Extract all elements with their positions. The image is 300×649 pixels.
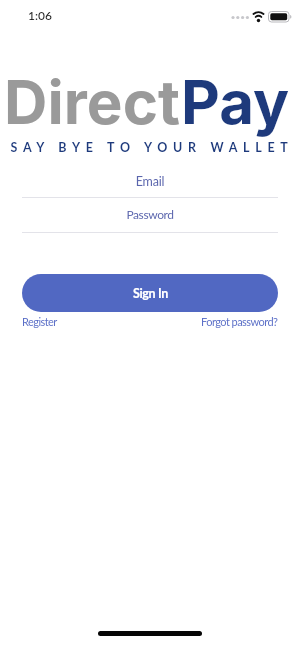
staticText: 1:06 xyxy=(28,8,52,22)
staticText: Password xyxy=(0,207,300,221)
staticText: Direct xyxy=(4,66,181,139)
button[interactable]: Password xyxy=(0,202,300,226)
staticText: Sign In xyxy=(133,286,168,301)
staticText: Email xyxy=(0,174,300,189)
staticText: SAY BYE TO YOUR WALLET xyxy=(2,140,300,155)
button[interactable]: Email xyxy=(0,169,300,193)
button[interactable]: Register xyxy=(22,315,57,328)
staticText: Pay xyxy=(181,66,290,139)
button[interactable]: Sign In xyxy=(22,274,278,312)
staticText: Forgot password? xyxy=(201,315,278,328)
staticText: Register xyxy=(22,315,57,328)
button[interactable]: Forgot password? xyxy=(201,315,278,328)
